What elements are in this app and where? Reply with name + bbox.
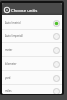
button[interactable]: Auto (metric)	[2, 16, 62, 30]
staticText: Auto (imperial)	[5, 34, 53, 38]
staticText: Auto (metric)	[5, 21, 53, 25]
staticText: Choose units	[11, 7, 38, 13]
button[interactable]: meter	[2, 43, 62, 57]
staticText: meter	[5, 48, 53, 52]
button[interactable]: miles	[2, 84, 62, 94]
button[interactable]: kilometer	[2, 57, 62, 71]
staticText: miles	[5, 89, 53, 93]
button[interactable]: Auto (imperial)	[2, 29, 62, 43]
button[interactable]: yard	[2, 71, 62, 85]
staticText: yard	[5, 76, 53, 80]
staticText: kilometer	[5, 62, 53, 66]
